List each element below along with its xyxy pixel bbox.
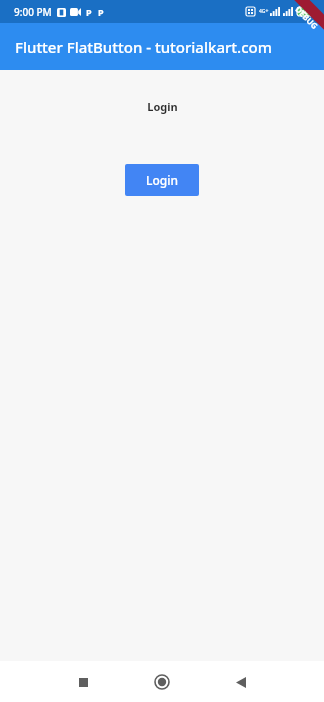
staticText: Login <box>146 172 178 188</box>
staticText: DEBUG <box>293 4 321 31</box>
staticText: 4G+ <box>259 8 269 15</box>
button[interactable]: Home <box>145 665 179 699</box>
button[interactable]: Login <box>125 164 199 196</box>
staticText: 9:00 PM <box>14 5 52 19</box>
staticText: Login <box>147 99 178 114</box>
button[interactable]: Recent apps <box>66 665 100 699</box>
staticText: 100 <box>301 8 312 16</box>
staticText: Flutter FlatButton - tutorialkart.com <box>15 37 272 57</box>
staticText: P <box>86 6 92 18</box>
button[interactable]: Back <box>224 665 258 699</box>
staticText: P <box>98 6 104 18</box>
